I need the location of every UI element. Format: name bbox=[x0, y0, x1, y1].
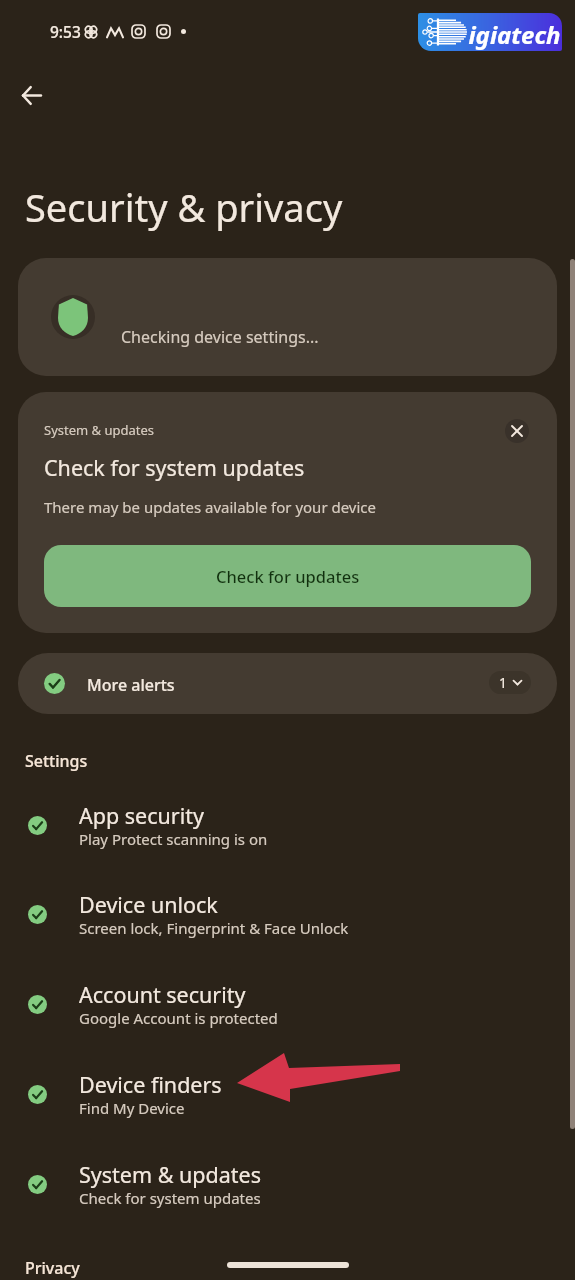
staticText: There may be updates available for your … bbox=[44, 497, 377, 517]
staticText: Privacy bbox=[25, 1257, 80, 1279]
button[interactable]: System & updates bbox=[0, 1151, 575, 1221]
staticText: Account security bbox=[79, 980, 246, 1009]
staticText: Security & privacy bbox=[25, 181, 343, 233]
staticText: Device finders bbox=[79, 1070, 222, 1099]
staticText: Device unlock bbox=[79, 890, 218, 919]
staticText: More alerts bbox=[87, 674, 175, 696]
button[interactable]: Device finders bbox=[0, 1061, 575, 1131]
button[interactable]: Expand alerts bbox=[489, 671, 531, 694]
staticText: App security bbox=[79, 801, 204, 830]
button[interactable]: Check for updates bbox=[44, 545, 531, 607]
staticText: Check for system updates bbox=[79, 1188, 261, 1208]
staticText: Screen lock, Fingerprint & Face Unlock bbox=[79, 918, 349, 938]
staticText: Settings bbox=[25, 750, 88, 772]
staticText: 1 bbox=[499, 673, 508, 692]
button[interactable]: Checking device settings... bbox=[18, 258, 557, 376]
button[interactable]: App security bbox=[0, 792, 575, 862]
button[interactable]: Back bbox=[10, 74, 52, 116]
staticText: System & updates bbox=[79, 1160, 261, 1189]
button[interactable]: Close bbox=[493, 407, 541, 455]
staticText: Find My Device bbox=[79, 1098, 185, 1118]
staticText: Checking device settings... bbox=[121, 326, 319, 348]
button[interactable]: Account security bbox=[0, 971, 575, 1041]
button[interactable]: More alerts bbox=[18, 653, 557, 714]
button[interactable]: Device unlock bbox=[0, 881, 575, 951]
staticText: igiatech bbox=[468, 18, 561, 51]
staticText: Play Protect scanning is on bbox=[79, 829, 268, 849]
staticText: Check for system updates bbox=[44, 453, 305, 482]
staticText: Google Account is protected bbox=[79, 1008, 278, 1028]
staticText: 9:53 bbox=[50, 21, 81, 42]
staticText: System & updates bbox=[44, 421, 155, 439]
staticText: Check for updates bbox=[216, 565, 360, 587]
